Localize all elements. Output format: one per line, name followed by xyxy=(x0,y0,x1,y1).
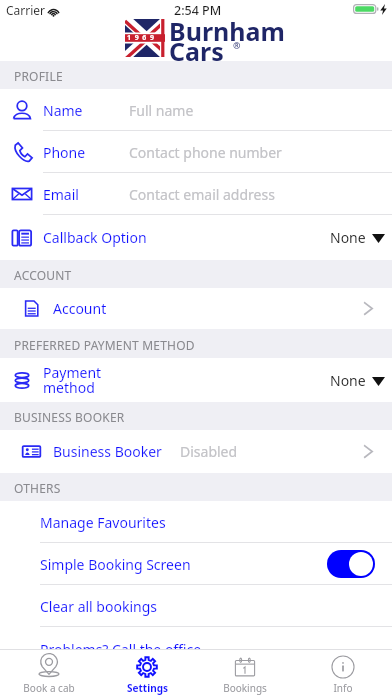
button[interactable]: Payment method xyxy=(0,358,392,402)
staticText: Simple Booking Screen xyxy=(40,555,191,574)
button[interactable]: Problems? Call the office xyxy=(0,627,392,649)
staticText: Account xyxy=(53,299,107,318)
staticText: Name xyxy=(43,101,83,120)
staticText: Manage Favourites xyxy=(40,513,166,532)
staticText: Cars xyxy=(169,34,224,68)
staticText: OTHERS xyxy=(14,480,61,496)
button[interactable]: Email xyxy=(0,173,392,215)
staticText: ACCOUNT xyxy=(14,267,72,283)
button[interactable]: Account xyxy=(0,288,392,329)
button[interactable]: Book a cab xyxy=(0,650,98,696)
staticText: Business Booker xyxy=(53,442,162,461)
staticText: PREFERRED PAYMENT METHOD xyxy=(14,337,195,353)
staticText: Disabled xyxy=(180,442,238,461)
staticText: Burnham xyxy=(169,14,285,48)
staticText: BUSINESS BOOKER xyxy=(14,409,125,425)
staticText: Clear all bookings xyxy=(40,597,157,616)
staticText: Full name xyxy=(129,101,194,120)
button[interactable]: Bookings xyxy=(196,650,294,696)
staticText: Bookings xyxy=(223,681,267,695)
button[interactable]: Info xyxy=(294,650,392,696)
staticText: None xyxy=(330,371,366,390)
button[interactable]: Name xyxy=(0,89,392,131)
button[interactable]: Manage Favourites xyxy=(0,501,392,543)
staticText: Phone xyxy=(43,143,86,162)
staticText: None xyxy=(330,228,366,247)
staticText: Email xyxy=(43,185,79,204)
button[interactable]: Clear all bookings xyxy=(0,585,392,627)
staticText: 1 9 6 9 xyxy=(127,33,154,43)
button[interactable]: Phone xyxy=(0,131,392,173)
staticText: Carrier xyxy=(6,2,46,18)
button[interactable]: Callback Option xyxy=(0,215,392,260)
staticText: 2:54 PM xyxy=(174,2,222,19)
button[interactable]: Business Booker xyxy=(0,430,392,473)
staticText: Contact email address xyxy=(129,185,275,204)
staticText: Book a cab xyxy=(23,681,75,695)
staticText: Callback Option xyxy=(43,228,147,247)
staticText: Contact phone number xyxy=(129,143,282,162)
staticText: PROFILE xyxy=(14,68,63,84)
staticText: ® xyxy=(233,39,241,51)
button[interactable]: Simple Booking Screen xyxy=(0,543,392,585)
staticText: Payment method xyxy=(43,363,102,397)
button[interactable]: Settings xyxy=(98,650,196,696)
staticText: Problems? Call the office xyxy=(40,640,202,649)
staticText: Settings xyxy=(127,681,168,695)
staticText: Info xyxy=(333,681,353,695)
